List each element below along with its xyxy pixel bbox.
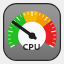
- button[interactable]: CPU monitor app icon: [3, 3, 61, 61]
